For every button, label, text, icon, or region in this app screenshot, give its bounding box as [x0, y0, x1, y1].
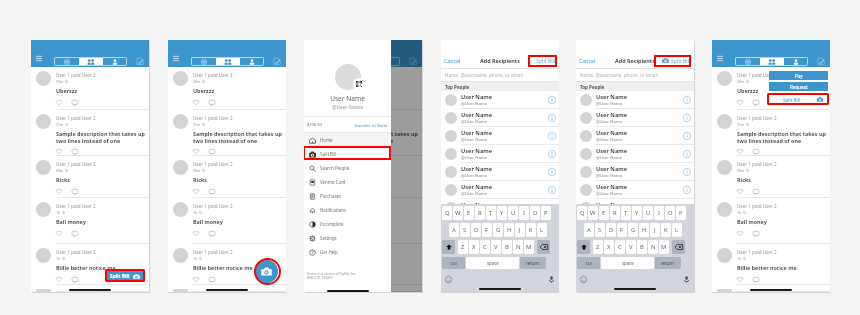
- button[interactable]: U: [508, 206, 518, 220]
- button[interactable]: Public feed: [191, 57, 216, 66]
- button[interactable]: R: [475, 206, 485, 220]
- button[interactable]: Comment: [343, 147, 352, 156]
- button[interactable]: Like: [54, 187, 63, 196]
- button[interactable]: D: [606, 223, 616, 237]
- button[interactable]: S: [595, 223, 605, 237]
- button[interactable]: Name, @username, phone, or email: [576, 69, 694, 81]
- button[interactable]: Comment: [343, 275, 352, 284]
- button[interactable]: I: [519, 206, 529, 220]
- button[interactable]: U: [643, 206, 653, 220]
- button[interactable]: K: [661, 223, 671, 237]
- button[interactable]: space: [601, 257, 654, 269]
- button[interactable]: W: [453, 206, 463, 220]
- button[interactable]: User Name: [576, 145, 694, 162]
- button[interactable]: User Name: [441, 181, 559, 198]
- button[interactable]: Comment: [70, 275, 79, 284]
- button[interactable]: H: [504, 223, 514, 237]
- button[interactable]: User Name: [441, 91, 559, 108]
- button[interactable]: Info: [547, 167, 556, 176]
- button[interactable]: Comment: [207, 229, 216, 238]
- button[interactable]: T: [621, 206, 631, 220]
- button[interactable]: Friends feed: [79, 57, 103, 66]
- button[interactable]: N: [648, 240, 658, 254]
- button[interactable]: Q: [577, 206, 587, 220]
- button[interactable]: Like: [54, 147, 63, 156]
- button[interactable]: Like: [191, 275, 200, 284]
- button[interactable]: B: [637, 240, 647, 254]
- button[interactable]: QR code: [353, 78, 365, 90]
- button[interactable]: Search People: [304, 161, 391, 175]
- button[interactable]: Split Bill: [304, 147, 391, 161]
- button[interactable]: L: [537, 223, 547, 237]
- button[interactable]: Public feed: [735, 57, 760, 66]
- button[interactable]: My feed: [784, 57, 808, 66]
- button[interactable]: Like: [191, 187, 200, 196]
- button[interactable]: Like: [54, 98, 63, 107]
- button[interactable]: Info: [547, 149, 556, 158]
- button[interactable]: Comment: [70, 187, 79, 196]
- button[interactable]: Comment: [207, 275, 216, 284]
- button[interactable]: O: [530, 206, 540, 220]
- button[interactable]: User Name: [576, 91, 694, 108]
- button[interactable]: User Name: [576, 163, 694, 180]
- button[interactable]: My feed: [240, 57, 264, 66]
- button[interactable]: Friends feed: [760, 57, 784, 66]
- button[interactable]: V: [626, 240, 636, 254]
- button[interactable]: return: [520, 257, 546, 269]
- button[interactable]: I: [654, 206, 664, 220]
- button[interactable]: Incomplete: [304, 217, 391, 231]
- button[interactable]: H: [639, 223, 649, 237]
- button[interactable]: Emoji: [579, 275, 588, 284]
- button[interactable]: Dictate: [682, 275, 691, 284]
- button[interactable]: P: [676, 206, 686, 220]
- button[interactable]: Like: [191, 98, 200, 107]
- button[interactable]: Info: [682, 167, 691, 176]
- button[interactable]: Comment: [751, 147, 760, 156]
- button[interactable]: Info: [682, 185, 691, 194]
- button[interactable]: Home: [304, 133, 391, 147]
- button[interactable]: Like: [735, 275, 744, 284]
- button[interactable]: Q: [442, 206, 452, 220]
- button[interactable]: Like: [735, 187, 744, 196]
- button[interactable]: Like: [327, 98, 336, 107]
- button[interactable]: Like: [54, 275, 63, 284]
- button[interactable]: O: [665, 206, 675, 220]
- button[interactable]: Comment: [70, 98, 79, 107]
- button[interactable]: Friends feed: [216, 57, 240, 66]
- button[interactable]: D: [471, 223, 481, 237]
- button[interactable]: 123: [577, 257, 600, 269]
- button[interactable]: Menu: [36, 56, 42, 61]
- button[interactable]: Info: [682, 149, 691, 158]
- button[interactable]: M: [659, 240, 669, 254]
- button[interactable]: Name, @username, phone, or email: [441, 69, 559, 81]
- button[interactable]: Purchases: [304, 189, 391, 203]
- button[interactable]: J: [515, 223, 525, 237]
- button[interactable]: Info: [682, 95, 691, 104]
- button[interactable]: Y: [632, 206, 642, 220]
- button[interactable]: Cancel: [576, 55, 599, 66]
- button[interactable]: A: [584, 223, 594, 237]
- button[interactable]: User Name: [441, 199, 559, 216]
- button[interactable]: K: [526, 223, 536, 237]
- button[interactable]: F: [617, 223, 627, 237]
- button[interactable]: Public feed: [54, 57, 79, 66]
- button[interactable]: Friends feed: [352, 57, 376, 66]
- button[interactable]: 123: [442, 257, 465, 269]
- button[interactable]: E: [464, 206, 474, 220]
- button[interactable]: Menu: [717, 56, 723, 61]
- button[interactable]: Public feed: [327, 57, 352, 66]
- button[interactable]: F: [482, 223, 492, 237]
- button[interactable]: B: [502, 240, 512, 254]
- button[interactable]: M: [524, 240, 534, 254]
- button[interactable]: Like: [735, 147, 744, 156]
- button[interactable]: Comment: [207, 98, 216, 107]
- button[interactable]: Split Bill: [769, 95, 828, 104]
- button[interactable]: Compose payment: [409, 57, 417, 65]
- button[interactable]: Info: [547, 95, 556, 104]
- button[interactable]: My feed: [376, 57, 400, 66]
- button[interactable]: Split Bill: [659, 55, 694, 66]
- button[interactable]: G: [493, 223, 503, 237]
- button[interactable]: Info: [547, 113, 556, 122]
